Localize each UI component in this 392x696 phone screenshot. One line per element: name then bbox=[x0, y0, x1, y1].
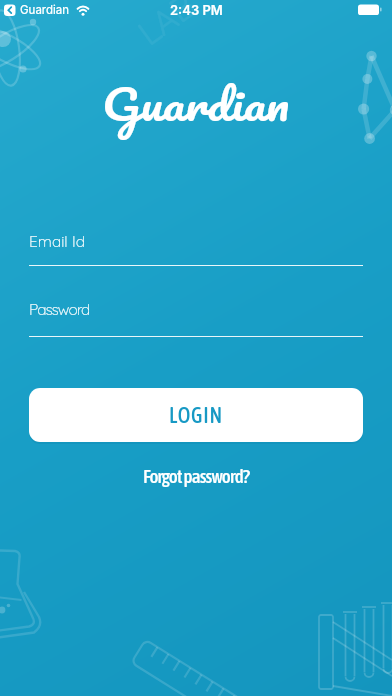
staticText: Password bbox=[29, 299, 90, 318]
staticText: Guardian bbox=[102, 67, 290, 139]
staticText: Guardian bbox=[20, 3, 70, 17]
button[interactable]: LOGIN bbox=[29, 388, 363, 442]
staticText: LAB bbox=[130, 0, 203, 53]
staticText: LOGIN bbox=[169, 403, 224, 428]
button[interactable]: Forgot password? bbox=[143, 465, 250, 487]
button[interactable] bbox=[29, 228, 363, 266]
button[interactable] bbox=[29, 298, 363, 337]
staticText: Email Id bbox=[29, 231, 85, 250]
staticText: 2:43 PM bbox=[170, 2, 223, 18]
